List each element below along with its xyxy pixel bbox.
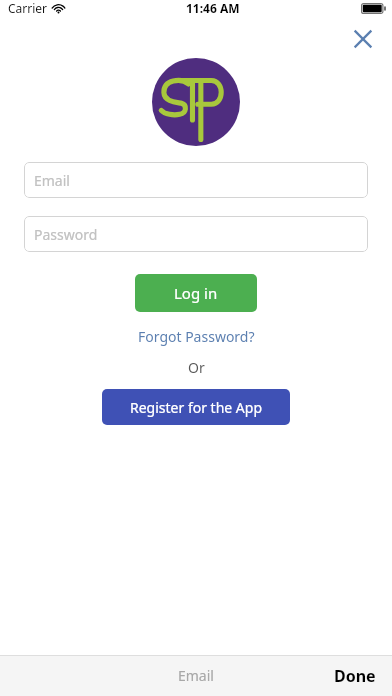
staticText: 11:46 AM — [186, 0, 240, 16]
staticText: Email — [178, 666, 214, 685]
button[interactable]: Email — [24, 162, 368, 198]
staticText: Carrier — [8, 0, 48, 16]
button[interactable]: Done — [318, 657, 392, 695]
button[interactable]: Register for the App — [102, 389, 290, 425]
staticText: Email — [34, 171, 70, 190]
button[interactable]: Forgot Password? — [130, 325, 263, 348]
staticText: Log in — [174, 283, 218, 303]
staticText: Or — [188, 358, 205, 377]
staticText: Forgot Password? — [138, 327, 255, 346]
staticText: Password — [34, 225, 98, 244]
button[interactable]: Log in — [135, 274, 257, 312]
staticText: Register for the App — [130, 398, 263, 417]
button[interactable]: Password — [24, 216, 368, 252]
staticText: Done — [334, 665, 376, 687]
button[interactable]: Close — [346, 22, 380, 56]
